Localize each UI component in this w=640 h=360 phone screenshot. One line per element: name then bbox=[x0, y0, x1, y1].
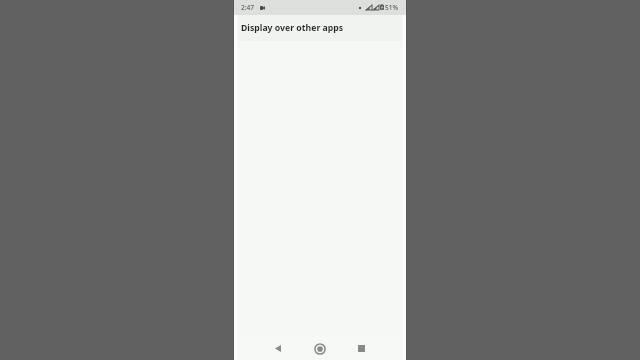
button[interactable]: Home bbox=[307, 337, 333, 360]
staticText: 2:47 bbox=[241, 3, 255, 12]
button[interactable]: Recent apps bbox=[348, 337, 374, 360]
staticText: Display over other apps bbox=[241, 22, 344, 34]
button[interactable]: Back bbox=[265, 337, 291, 360]
staticText: 51% bbox=[385, 3, 399, 12]
